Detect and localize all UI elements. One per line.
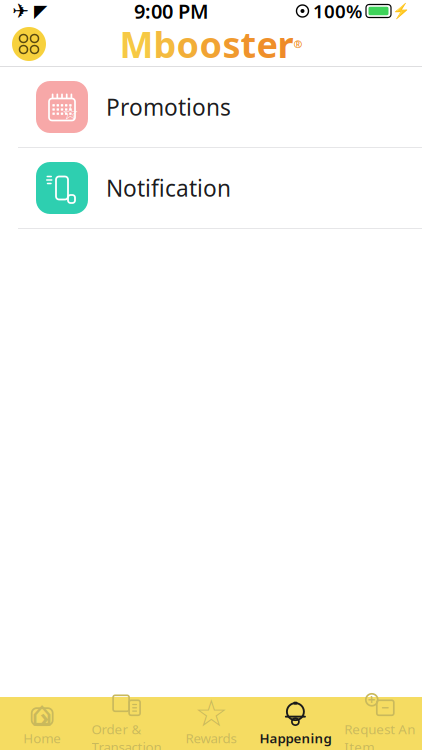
- staticText: o: [199, 20, 222, 68]
- staticText: ⌂: [31, 694, 53, 733]
- staticText: ⚡: [392, 3, 410, 19]
- staticText: M: [119, 20, 153, 68]
- button[interactable]: Happening: [253, 697, 338, 750]
- staticText: b: [153, 20, 176, 68]
- button[interactable]: Menu: [7, 22, 51, 66]
- staticText: s: [222, 20, 240, 68]
- button[interactable]: ☆: [0, 67, 422, 147]
- button[interactable]: ⌂: [0, 697, 84, 750]
- staticText: Home: [23, 729, 61, 747]
- staticText: ◤: [34, 1, 47, 21]
- staticText: ®: [293, 37, 302, 51]
- staticText: Rewards: [185, 729, 236, 747]
- staticText: ☆: [62, 103, 79, 124]
- button[interactable]: Notification: [0, 148, 422, 228]
- staticText: 100%: [313, 0, 362, 23]
- staticText: ☆: [194, 692, 227, 735]
- staticText: e: [256, 20, 277, 68]
- staticText: t: [240, 20, 256, 68]
- staticText: Request An Item: [344, 720, 415, 750]
- staticText: ›: [40, 700, 49, 733]
- staticText: +: [368, 691, 376, 709]
- button[interactable]: Order & Transaction: [84, 697, 169, 750]
- staticText: Order & Transaction: [92, 720, 162, 750]
- staticText: Happening: [259, 729, 331, 747]
- staticText: ✈: [12, 0, 29, 22]
- staticText: o: [176, 20, 199, 68]
- button[interactable]: +: [338, 697, 422, 750]
- staticText: Promotions: [106, 92, 231, 122]
- staticText: Notification: [106, 173, 231, 203]
- staticText: r: [277, 20, 293, 68]
- button[interactable]: ☆: [169, 697, 253, 750]
- staticText: 9:00 PM: [134, 0, 209, 24]
